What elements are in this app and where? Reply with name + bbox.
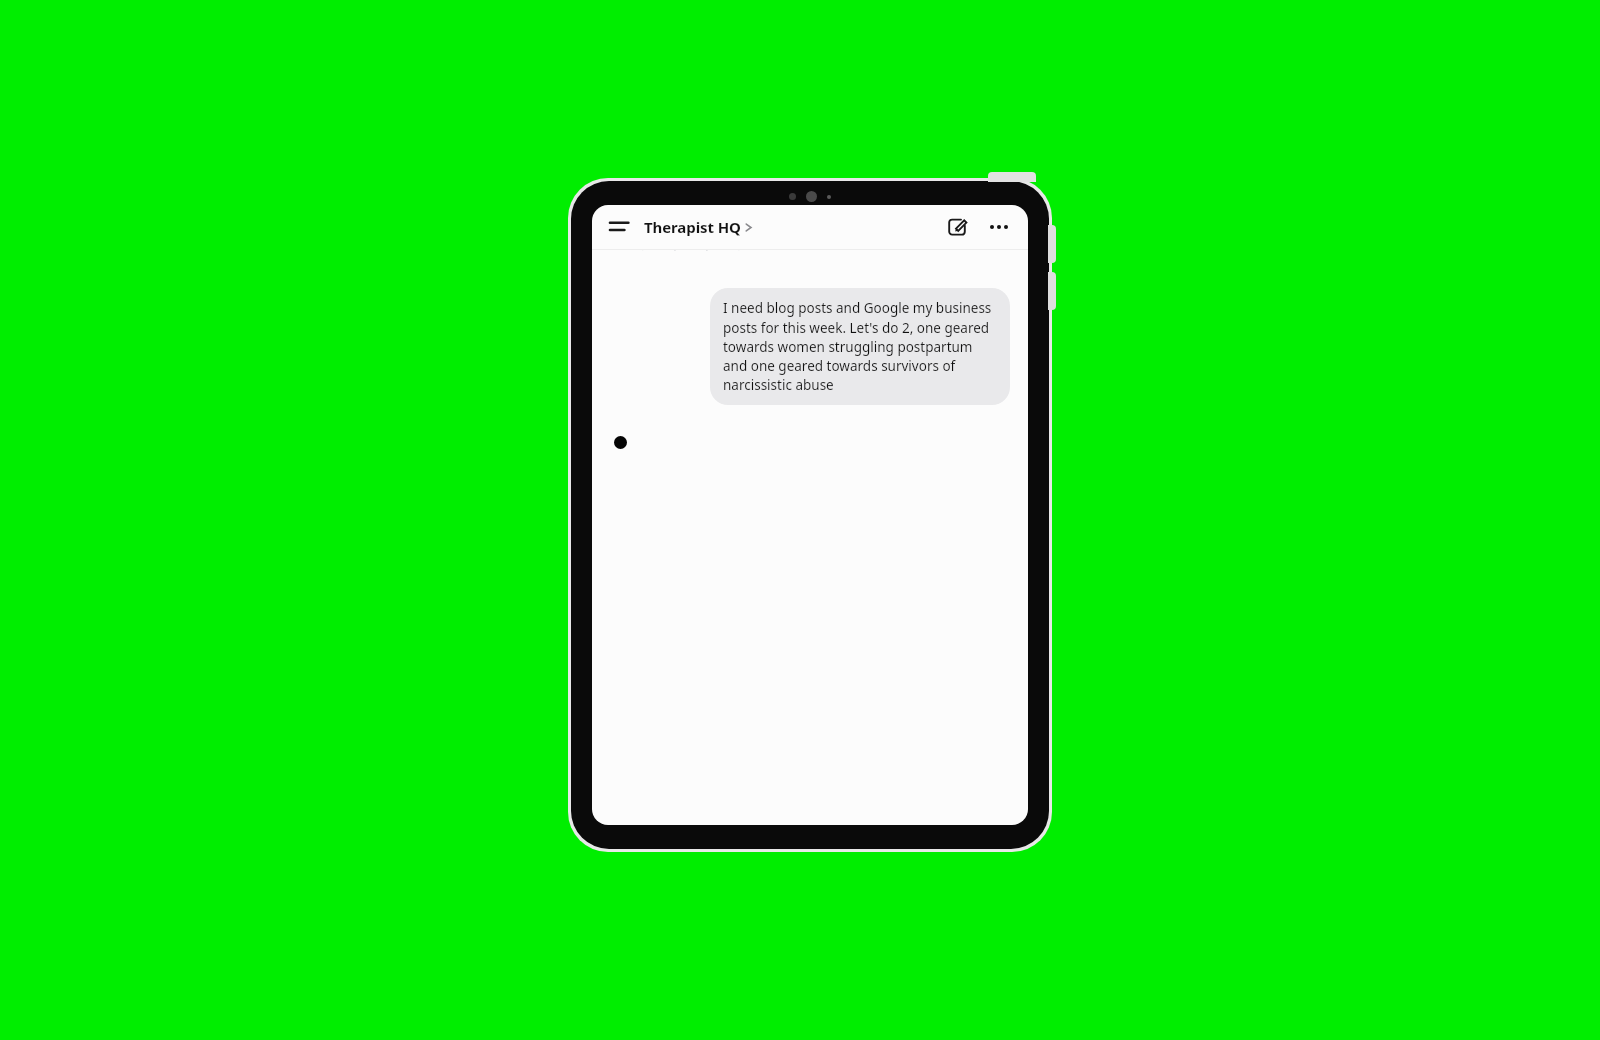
other: Power xyxy=(988,172,1036,182)
staticText: Therapist HQ xyxy=(644,217,741,237)
other: Volume up xyxy=(1048,225,1056,263)
other: Volume down xyxy=(1048,272,1056,310)
button[interactable]: More options xyxy=(984,212,1014,242)
button[interactable]: Menu xyxy=(606,213,634,241)
button[interactable]: I need blog posts and Google my business… xyxy=(710,288,1010,405)
button[interactable]: Compose xyxy=(942,212,972,242)
button[interactable]: Assistant is typing xyxy=(614,431,636,453)
button[interactable]: Therapist HQ xyxy=(644,213,753,241)
staticText: I need blog posts and Google my business… xyxy=(723,299,997,394)
